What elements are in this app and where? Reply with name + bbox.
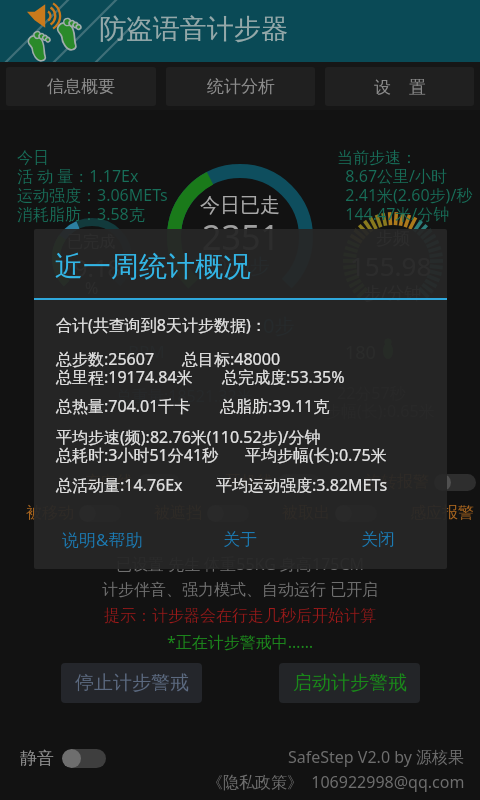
staticText: 信息概要	[47, 76, 115, 97]
button[interactable]: 静音	[20, 748, 106, 769]
button[interactable]: 说明&帮助	[34, 519, 171, 559]
other: Voice alarm	[26, 3, 74, 29]
staticText: 总脂肪:39.11克	[220, 395, 330, 417]
staticText: %	[85, 277, 99, 299]
staticText: 提示：计步器会在行走几秒后开始计算	[104, 606, 376, 626]
staticText: 步频	[376, 228, 410, 249]
staticText: 防盗语音计步器	[99, 12, 288, 46]
button[interactable]: 关闭	[309, 519, 447, 559]
staticText: 说明&帮助	[62, 528, 143, 551]
button[interactable]: 设 置	[325, 67, 474, 106]
staticText: 被取出	[282, 503, 330, 523]
staticText: 设 置	[374, 75, 426, 98]
staticText: 今日已走	[200, 193, 280, 218]
staticText: 总耗时:3小时51分41秒	[56, 444, 245, 466]
staticText: 平均运动强度:3.82METs	[216, 474, 388, 496]
staticText: *正在计步警戒中……	[167, 631, 314, 653]
staticText: 合计(共查询到8天计步数据)：	[56, 314, 267, 336]
button[interactable]: 旋转报警	[365, 472, 476, 492]
staticText: 22分57秒	[337, 382, 406, 404]
staticText: 今日 活 动 量：1.17Ex 运动强度：3.06METs 消耗脂肪：3.58克	[17, 148, 168, 225]
staticText: 关闭	[361, 529, 395, 550]
staticText: 感应报警	[410, 503, 474, 523]
button[interactable]: 启动计步警戒	[279, 663, 420, 703]
staticText: 平均步速(频):82.76米(110.52步)/分钟	[56, 426, 321, 448]
staticText: BPM	[128, 340, 165, 363]
button[interactable]: 被移动	[26, 503, 121, 523]
button[interactable]: 耳机线	[225, 472, 320, 492]
staticText: 总热量:704.01千卡	[56, 395, 220, 417]
staticText: 总步数:25607	[56, 348, 182, 370]
button[interactable]: 关于	[171, 519, 309, 559]
staticText: 停止计步警戒	[75, 671, 189, 695]
staticText: 总里程:19174.84米	[56, 366, 222, 388]
staticText: 8000步	[204, 252, 270, 279]
staticText: 旋转报警	[365, 472, 429, 492]
staticText: 2351	[202, 214, 280, 260]
button[interactable]: 统计分析	[166, 67, 315, 106]
staticText: 关于	[223, 529, 257, 550]
staticText: 29.18	[60, 251, 122, 284]
staticText: 计步伴音、强力模式、自动运行 已开启	[102, 578, 379, 600]
staticText: 总活动量:14.76Ex	[56, 474, 216, 496]
button[interactable]: 充电线	[85, 472, 180, 492]
staticText: SafeStep V2.0 by 源核果	[288, 746, 465, 768]
button[interactable]: 停止计步警戒	[61, 663, 202, 703]
staticText: 近一周统计概况	[55, 249, 251, 284]
staticText: 启动计步警戒	[293, 671, 407, 695]
staticText: 步幅(长):0.65米	[325, 400, 435, 422]
staticText: 耳机线	[225, 472, 273, 492]
staticText: 总重量:18521.32米	[116, 385, 253, 407]
staticText: 当前步速： 8.67公里/小时 2.41米(2.60步)/秒 144.47米/分…	[337, 148, 473, 225]
staticText: 被遮挡	[154, 503, 202, 523]
staticText: 步/分钟	[364, 281, 422, 304]
staticText: 总目标:48000	[182, 348, 281, 370]
staticText: 静音	[20, 748, 54, 769]
staticText: 统计分析	[207, 76, 275, 97]
staticText: 总完成度:53.35%	[222, 366, 345, 388]
staticText: 被移动	[26, 503, 74, 523]
staticText: 充电线	[85, 472, 133, 492]
button[interactable]: 信息概要	[6, 67, 156, 106]
staticText: 《隐私政策》 106922998@qq.com	[207, 771, 465, 793]
staticText: 已设置 先生 体重55KG 身高175CM	[116, 553, 365, 575]
staticText: 平均步幅(长):0.75米	[245, 444, 387, 466]
